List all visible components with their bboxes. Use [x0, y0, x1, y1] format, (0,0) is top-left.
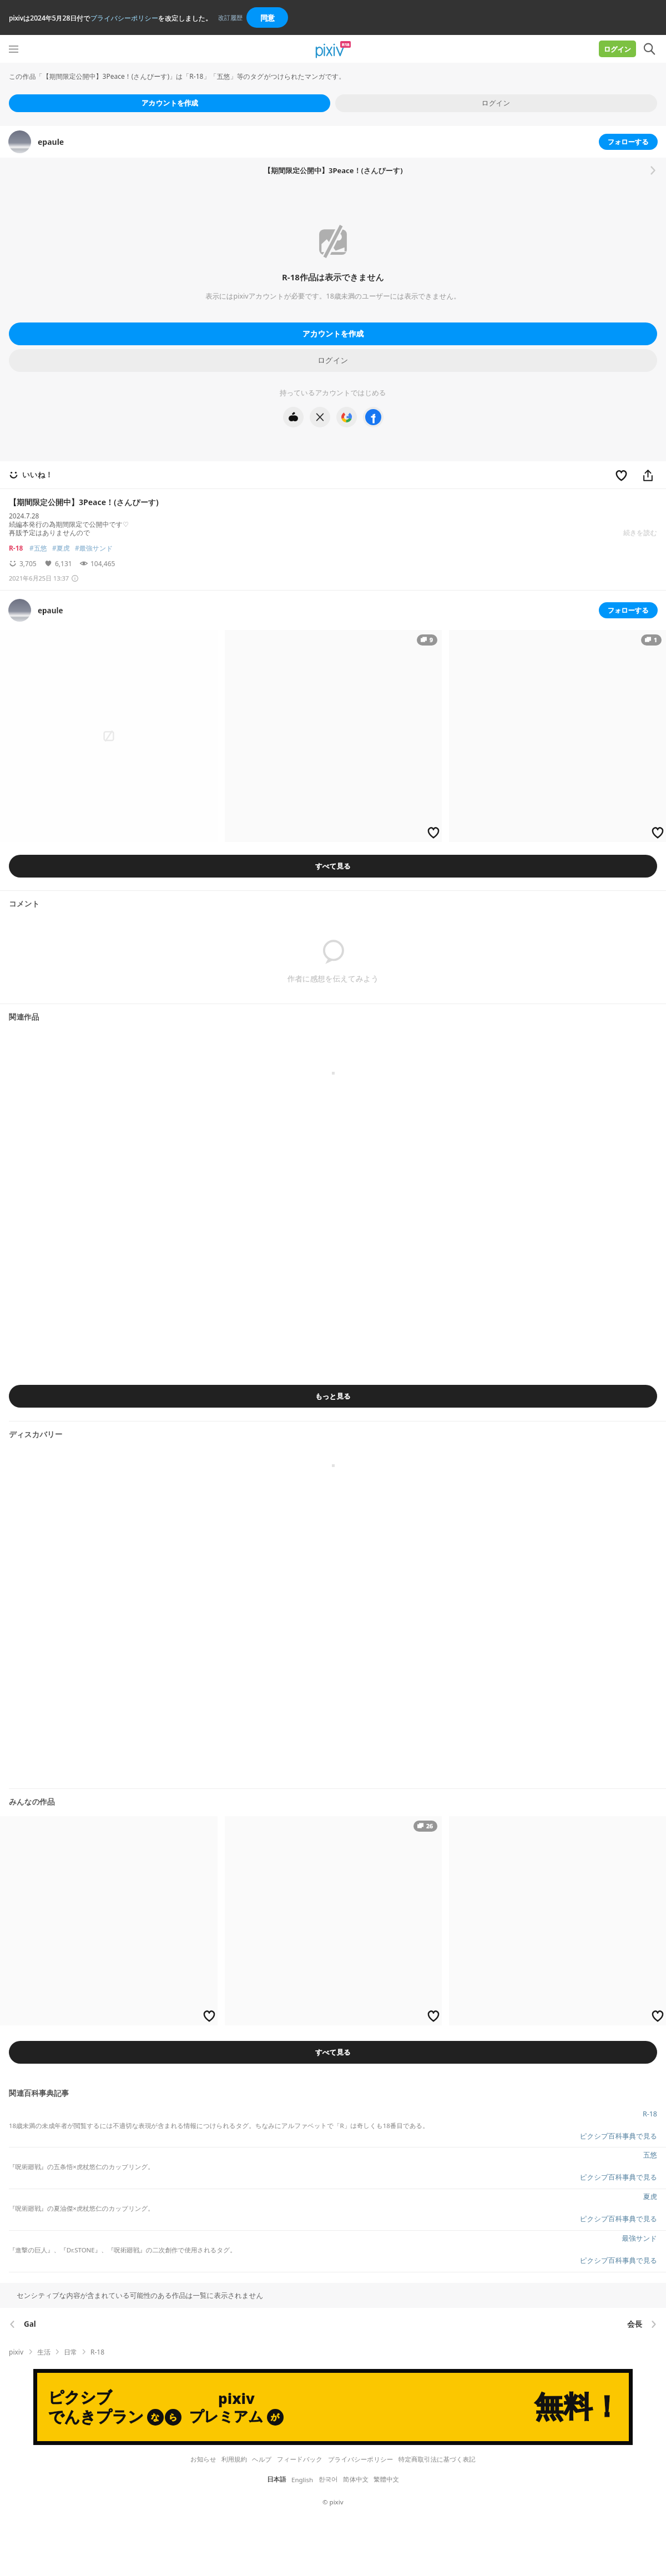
button[interactable]: 9 — [225, 630, 442, 842]
button[interactable]: #夏虎 — [52, 543, 70, 552]
button[interactable]: Like — [651, 826, 664, 839]
staticText: ら — [169, 2412, 178, 2423]
button[interactable]: 26 — [225, 1816, 442, 2025]
button[interactable]: 改訂履歴 — [218, 14, 243, 22]
button[interactable]: Facebook — [363, 407, 384, 427]
staticText: 持っているアカウントではじめる — [280, 389, 386, 397]
staticText: ピクシブ百科事典で見る — [9, 2173, 657, 2182]
button[interactable]: English — [291, 2476, 314, 2484]
staticText: ディスカバリー — [9, 1430, 63, 1439]
button[interactable]: ログイン — [335, 94, 657, 112]
button[interactable]: #最強サンド — [75, 543, 113, 552]
staticText: が — [271, 2412, 280, 2423]
button[interactable]: Like — [203, 2009, 216, 2023]
button[interactable]: アカウントを作成 — [9, 94, 330, 112]
staticText: 1 — [654, 636, 658, 644]
button[interactable]: Search — [640, 40, 658, 58]
button[interactable]: Share — [638, 466, 657, 485]
staticText: ピクシブ — [48, 2388, 112, 2407]
staticText: ピクシブ百科事典で見る — [9, 2132, 657, 2141]
staticText: 9 — [430, 636, 433, 644]
staticText: 6,131 — [55, 559, 72, 568]
staticText: 続編本発行の為期間限定で公開中です♡ — [9, 520, 129, 528]
button[interactable]: R-18 — [9, 543, 23, 552]
button[interactable]: Menu — [2, 38, 24, 60]
button[interactable]: ヘルプ — [252, 2456, 272, 2463]
button[interactable]: 【期間限定公開中】3Peace！(さんぴーす) — [0, 158, 666, 183]
button[interactable]: R-18 — [90, 2347, 105, 2356]
button[interactable]: ログイン — [599, 41, 636, 57]
staticText: 関連百科事典記事 — [9, 2089, 69, 2098]
staticText: 2021年6月25日 13:37 — [9, 574, 69, 582]
button[interactable]: pixiv premium ad — [37, 2373, 629, 2441]
button[interactable]: pixiv — [9, 2347, 24, 2356]
button[interactable]: 生活 — [37, 2348, 51, 2356]
staticText: 同意 — [260, 13, 275, 22]
staticText: アカウントを作成 — [302, 329, 364, 339]
button[interactable]: Like — [427, 2009, 440, 2023]
staticText: プレミアム — [189, 2408, 264, 2426]
staticText: センシティブな内容が含まれている可能性のある作品は一覧に表示されません — [17, 2291, 264, 2300]
staticText: 『呪術廻戦』の五条悟×虎杖悠仁のカップリング。 — [9, 2162, 154, 2171]
button[interactable]: 简体中文 — [343, 2476, 369, 2483]
button[interactable]: 한국어 — [319, 2476, 338, 2483]
staticText: 104,465 — [90, 559, 115, 568]
button[interactable]: 夏虎 — [0, 2189, 666, 2231]
staticText: 2024.7.28 — [9, 511, 39, 520]
button[interactable] — [8, 599, 31, 622]
button[interactable]: 特定商取引法に基づく表記 — [398, 2456, 476, 2463]
button[interactable]: 同意 — [246, 7, 288, 28]
button[interactable]: フィードバック — [277, 2456, 323, 2463]
button[interactable]: #五悠 — [29, 543, 47, 552]
button[interactable]: ログイン — [9, 349, 657, 372]
button[interactable]: Like — [612, 466, 630, 485]
button[interactable]: Apple — [283, 407, 304, 427]
button[interactable]: 五悠 — [0, 2147, 666, 2189]
button[interactable]: Like — [427, 826, 440, 839]
staticText: © pixiv — [322, 2498, 344, 2507]
button[interactable]: Like — [449, 1816, 666, 2025]
button[interactable]: R-18 — [0, 2106, 666, 2147]
staticText: コメント — [9, 899, 40, 909]
staticText: 表示にはpixivアカウントが必要です。18歳未満のユーザーには表示できません。 — [205, 291, 461, 301]
button[interactable]: Like — [651, 2009, 664, 2023]
button[interactable]: フォローする — [599, 602, 658, 618]
staticText: R18 — [342, 42, 350, 47]
button[interactable]: X — [310, 407, 330, 427]
button[interactable]: Gal — [8, 2319, 36, 2329]
staticText: 『進撃の巨人』、『Dr.STONE』、『呪術廻戦』の二次創作で使用されるタグ。 — [9, 2246, 236, 2255]
button[interactable]: すべて見る — [9, 855, 657, 878]
staticText: ログイン — [317, 356, 349, 365]
staticText: 『呪術廻戦』の夏油傑×虎杖悠仁のカップリング。 — [9, 2204, 154, 2213]
staticText: ログイン — [482, 99, 511, 108]
button[interactable]: フォローする — [599, 134, 658, 150]
button[interactable]: Like — [0, 1816, 218, 2025]
button[interactable]: 1 — [449, 630, 666, 842]
staticText: すべて見る — [315, 862, 351, 871]
button[interactable]: アカウントを作成 — [9, 322, 657, 345]
button[interactable]: 日常 — [64, 2348, 77, 2356]
button[interactable]: 最強サンド — [0, 2231, 666, 2272]
button[interactable]: もっと見る — [9, 1385, 657, 1408]
button[interactable]: プライバシーポリシー — [328, 2456, 393, 2463]
button[interactable]: 続きを読む — [623, 528, 657, 537]
button[interactable]: 利用規約 — [221, 2456, 247, 2463]
staticText: ピクシブ百科事典で見る — [9, 2256, 657, 2265]
button[interactable]: すべて見る — [9, 2041, 657, 2064]
button[interactable]: 日本語 — [267, 2476, 286, 2483]
button[interactable]: 会長 — [627, 2320, 658, 2329]
button[interactable]: 繁體中文 — [374, 2476, 399, 2483]
button[interactable]: epaule — [8, 126, 658, 158]
staticText: もっと見る — [315, 1392, 351, 1401]
staticText: この作品「【期間限定公開中】3Peace！(さんぴーす)」は「R-18」「五悠」… — [9, 72, 346, 80]
staticText: アカウントを作成 — [142, 99, 198, 108]
staticText: 【期間限定公開中】3Peace！(さんぴーす) — [264, 165, 403, 175]
button[interactable]: epaule — [38, 606, 63, 616]
staticText: すべて見る — [315, 2048, 351, 2057]
button[interactable]: お知らせ — [190, 2456, 216, 2463]
staticText: 【期間限定公開中】3Peace！(さんぴーす) — [9, 497, 159, 507]
staticText: 18歳未満の未成年者が閲覧するには不適切な表現が含まれる情報につけられるタグ。ち… — [9, 2121, 429, 2130]
staticText: でんきプラン — [48, 2407, 144, 2427]
button[interactable]: Google — [336, 407, 357, 427]
